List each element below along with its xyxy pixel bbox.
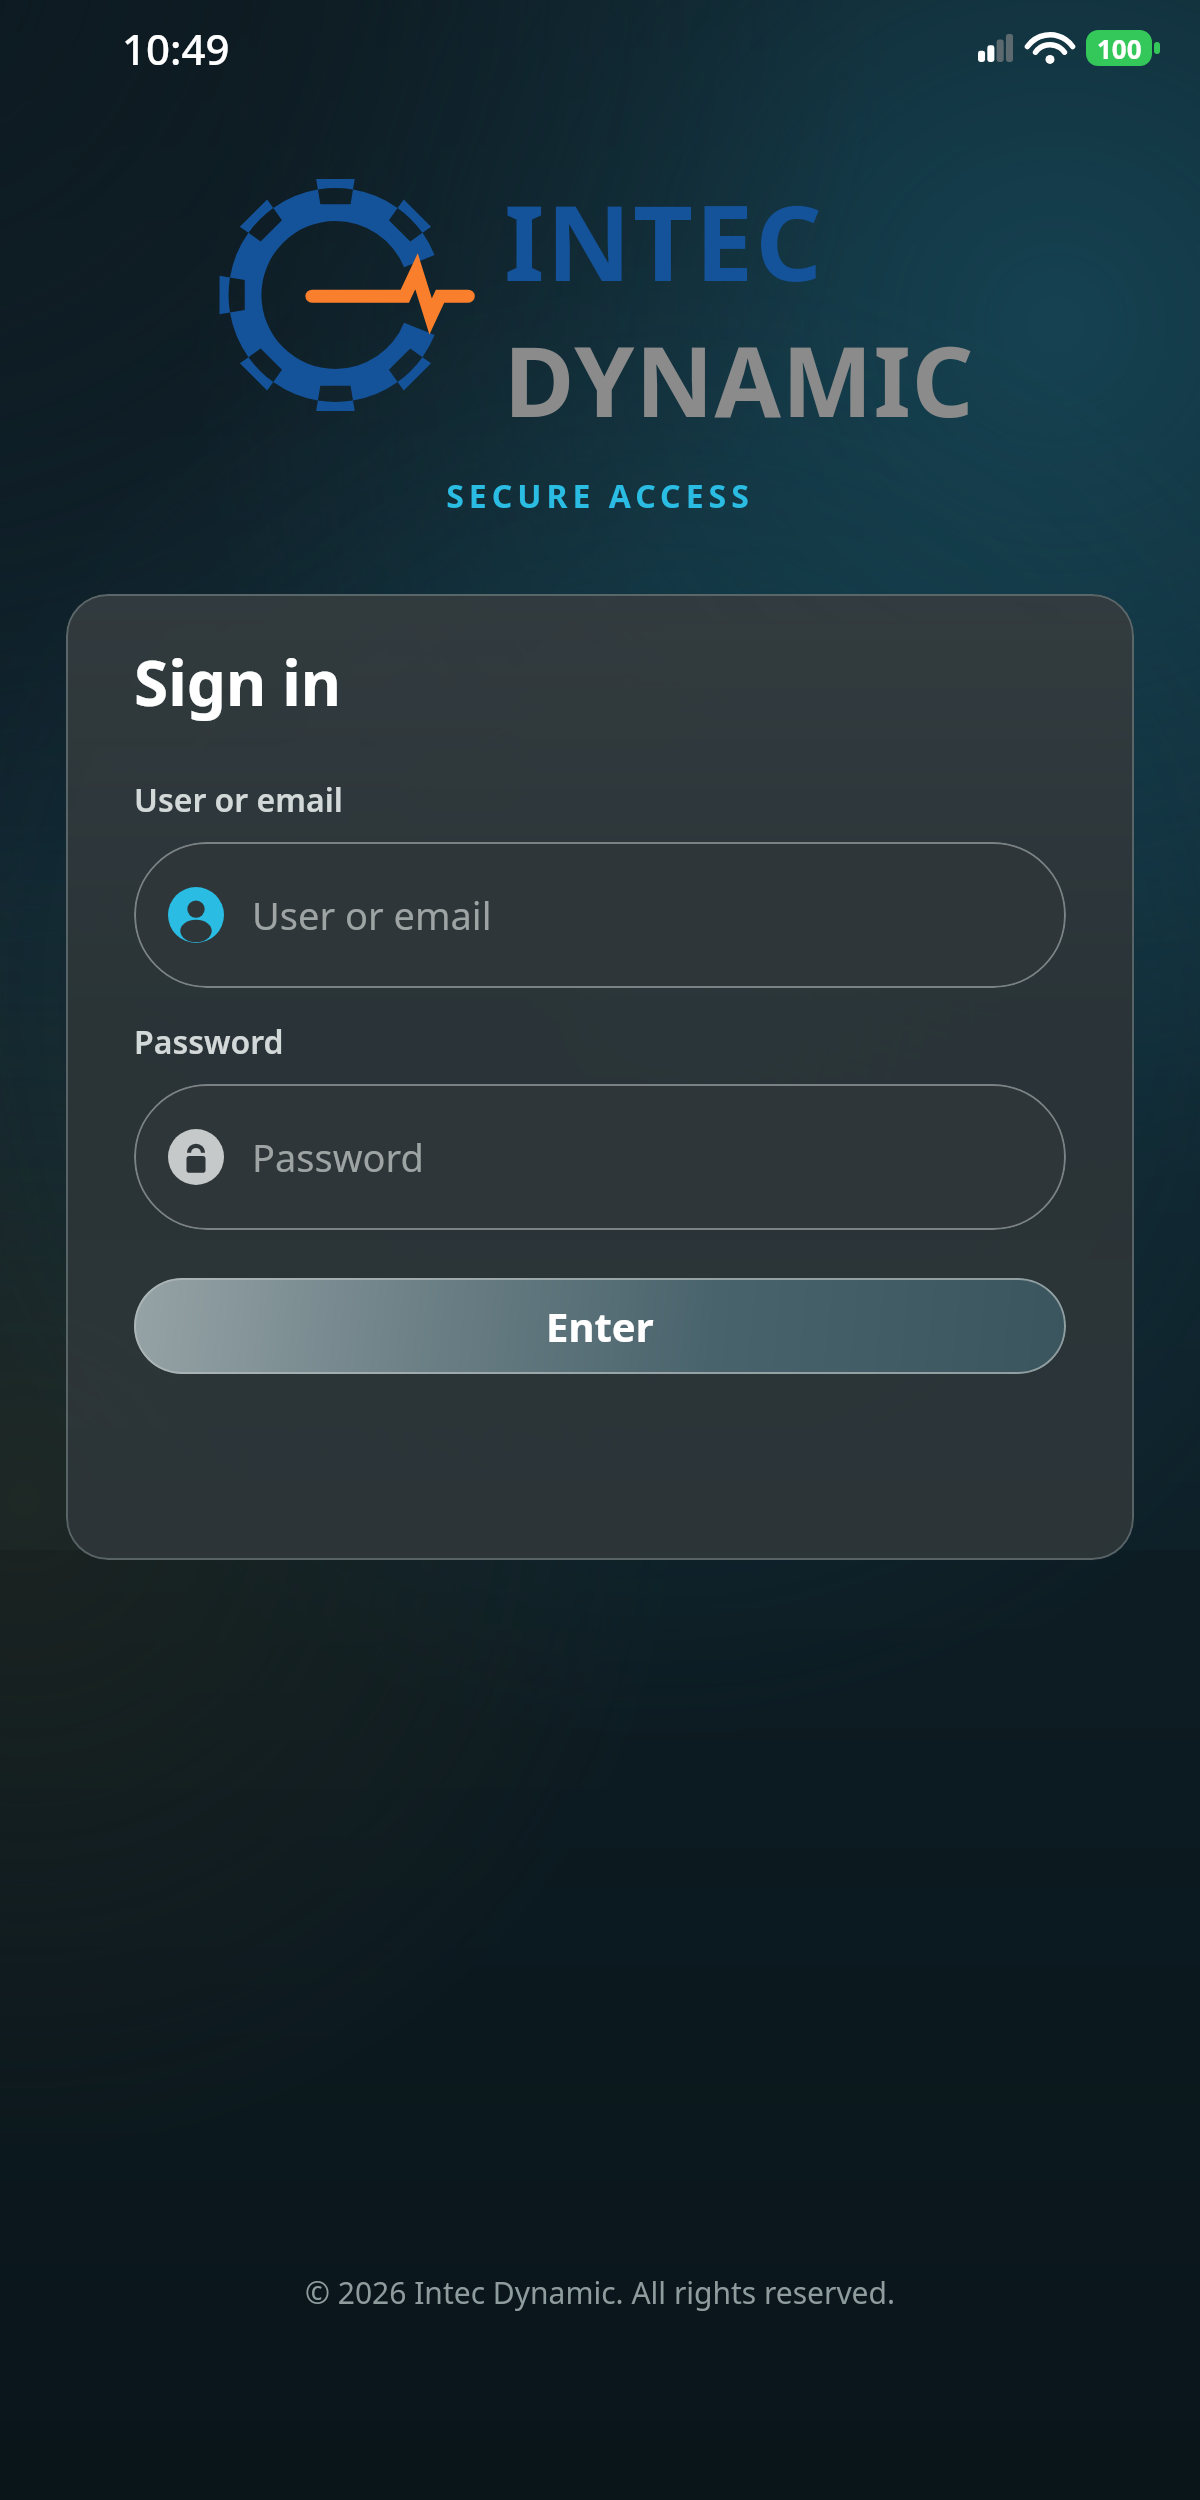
staticText: Enter (546, 1299, 654, 1353)
staticText: © 2026 Intec Dynamic. All rights reserve… (0, 2272, 1200, 2313)
staticText: User or email (134, 778, 343, 822)
other: User (168, 887, 224, 943)
staticText: 100 (1097, 31, 1142, 66)
other: Password (168, 1129, 224, 1185)
button[interactable]: User (134, 842, 1066, 988)
staticText: Password (252, 1131, 424, 1183)
button[interactable]: Enter (134, 1278, 1066, 1374)
staticText: Password (134, 1020, 284, 1064)
staticText: Sign in (134, 640, 342, 724)
staticText: User or email (252, 889, 492, 941)
staticText: DYNAMIC (504, 314, 975, 420)
staticText: SECURE ACCESS (0, 474, 1200, 518)
staticText: INTEC (504, 170, 825, 312)
staticText: 10:49 (122, 20, 230, 77)
button[interactable]: Password (134, 1084, 1066, 1230)
